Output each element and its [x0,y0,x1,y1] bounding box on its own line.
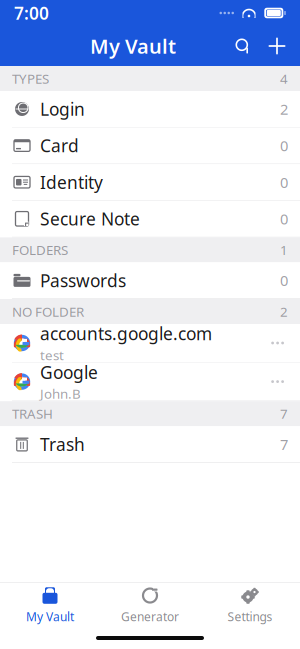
staticText: NO FOLDER [12,303,84,320]
staticText: 7:00 [14,1,49,24]
staticText: Login [40,97,85,120]
staticText: FOLDERS [12,241,68,259]
staticText: 2 [280,303,288,320]
button[interactable]: Login [0,91,300,128]
staticText: 0 [280,271,288,290]
button[interactable]: Generator [100,583,200,627]
staticText: Identity [40,171,103,194]
staticText: 1 [280,241,288,259]
staticText: 7 [280,434,288,454]
staticText: 0 [280,136,288,155]
staticText: My Vault [26,608,74,624]
staticText: Secure Note [40,207,140,230]
staticText: Settings [227,608,272,624]
button[interactable]: Identity [0,164,300,201]
staticText: 2 [280,99,288,119]
staticText: TRASH [12,405,53,422]
button[interactable]: My Vault [0,583,100,627]
staticText: Google [40,361,98,384]
button[interactable]: Passwords [0,262,300,299]
button[interactable]: Settings [200,583,300,627]
staticText: My Vault [90,33,176,59]
staticText: TYPES [12,70,49,87]
staticText: test [40,346,64,364]
button[interactable]: Google [0,363,300,401]
staticText: 7 [280,405,288,422]
staticText: Trash [40,433,85,456]
staticText: Generator [121,608,179,624]
staticText: 0 [280,172,288,192]
button[interactable]: Secure Note [0,201,300,237]
button[interactable]: accounts.google.com [0,324,300,363]
button[interactable]: Card [0,128,300,164]
staticText: Card [40,134,79,157]
button[interactable]: Search [226,29,260,63]
staticText: Passwords [40,269,126,292]
staticText: accounts.google.com [40,322,212,345]
staticText: 0 [280,209,288,229]
staticText: 4 [280,70,288,87]
button[interactable]: Add item [260,29,294,63]
button[interactable]: Trash [0,426,300,463]
staticText: John.B [40,385,81,402]
